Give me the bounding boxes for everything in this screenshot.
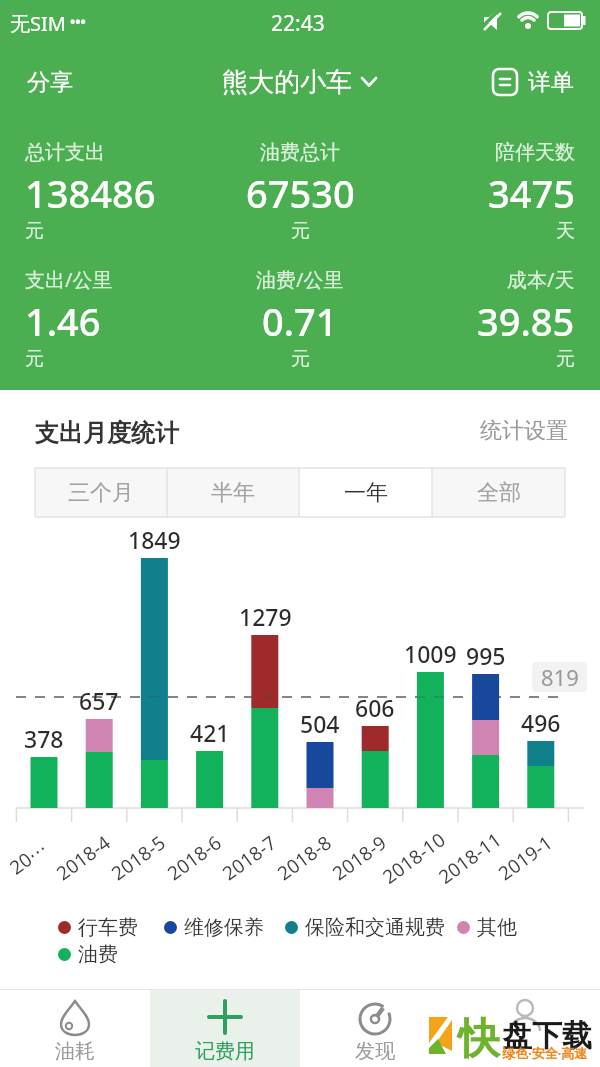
staticText: 熊大的小车 xyxy=(222,66,352,99)
button[interactable]: 油耗 xyxy=(0,990,150,1067)
staticText: 1009 xyxy=(404,638,457,668)
staticText: 半年 xyxy=(211,479,255,507)
staticText: 快 xyxy=(458,1013,500,1066)
staticText: 支出/公里 xyxy=(25,266,113,293)
staticText: 绿色·安全·高速 xyxy=(502,1044,588,1062)
staticText: 三个月 xyxy=(68,479,134,507)
button[interactable]: 发现 xyxy=(300,990,450,1067)
staticText: 995 xyxy=(466,640,506,670)
button[interactable]: 记费用 xyxy=(150,990,300,1067)
staticText: 2018-10 xyxy=(377,826,451,890)
staticText: 2018-7 xyxy=(217,829,282,886)
staticText: 支出月度统计 xyxy=(35,418,179,448)
staticText: 统计设置 xyxy=(480,417,568,445)
staticText: 总计支出 xyxy=(25,140,105,165)
staticText: 2018-8 xyxy=(272,829,337,886)
staticText: 油费 xyxy=(78,942,118,967)
staticText: 全部 xyxy=(477,479,521,507)
staticText: 2018-11 xyxy=(433,826,507,890)
staticText: 元 xyxy=(291,219,310,243)
button[interactable]: 三个月 xyxy=(35,468,167,517)
staticText: 0.71 xyxy=(262,295,338,347)
staticText: 保险和交通规费 xyxy=(305,915,445,940)
staticText: 行车费 xyxy=(78,915,138,940)
staticText: 421 xyxy=(190,717,230,747)
staticText: 2019-1 xyxy=(493,829,558,886)
button[interactable] xyxy=(450,990,600,1067)
staticText: 元 xyxy=(291,347,310,371)
staticText: 陪伴天数 xyxy=(495,140,575,165)
staticText: 元 xyxy=(25,347,44,371)
staticText: 成本/天 xyxy=(507,266,575,293)
staticText: 138486 xyxy=(25,167,156,219)
staticText: 元 xyxy=(25,219,44,243)
staticText: 3475 xyxy=(488,167,575,219)
staticText: 盘下载 xyxy=(502,1017,592,1055)
button[interactable]: 详单 xyxy=(490,62,590,102)
staticText: 详单 xyxy=(528,68,574,97)
staticText: 606 xyxy=(355,692,395,722)
staticText: 元 xyxy=(556,347,575,371)
button[interactable]: 全部 xyxy=(432,468,565,517)
staticText: 天 xyxy=(556,219,575,243)
staticText: 其他 xyxy=(477,915,517,940)
staticText: 一年 xyxy=(344,479,388,507)
staticText: 1.46 xyxy=(25,295,101,347)
staticText: 油费总计 xyxy=(260,140,340,165)
staticText: 657 xyxy=(79,685,119,715)
button[interactable]: 熊大的小车 xyxy=(210,62,390,102)
staticText: 2018-5 xyxy=(106,829,171,886)
staticText: 378 xyxy=(24,723,64,753)
button[interactable]: 半年 xyxy=(167,468,299,517)
staticText: 496 xyxy=(521,707,561,737)
staticText: 2018-9 xyxy=(327,829,392,886)
staticText: 39.85 xyxy=(477,295,575,347)
staticText: 504 xyxy=(300,708,340,738)
staticText: 67530 xyxy=(246,167,355,219)
button[interactable]: 统计设置 xyxy=(448,414,568,448)
staticText: 无SIM xyxy=(10,10,66,37)
staticText: 维修保养 xyxy=(184,915,264,940)
staticText: 记费用 xyxy=(195,1039,255,1064)
staticText: 油费/公里 xyxy=(256,266,344,293)
staticText: 20⋯ xyxy=(4,835,53,880)
staticText: 819 xyxy=(541,662,579,692)
staticText: 发现 xyxy=(355,1039,395,1064)
button[interactable]: 分享 xyxy=(15,62,85,102)
staticText: 1279 xyxy=(239,601,292,631)
button[interactable]: 一年 xyxy=(299,468,432,517)
staticText: 2018-4 xyxy=(51,829,116,886)
staticText: 2018-6 xyxy=(162,829,227,886)
staticText: ••• xyxy=(70,12,86,31)
staticText: 分享 xyxy=(27,68,73,97)
staticText: 油耗 xyxy=(55,1039,95,1064)
staticText: 1849 xyxy=(128,524,181,554)
staticText: 22:43 xyxy=(271,9,325,38)
